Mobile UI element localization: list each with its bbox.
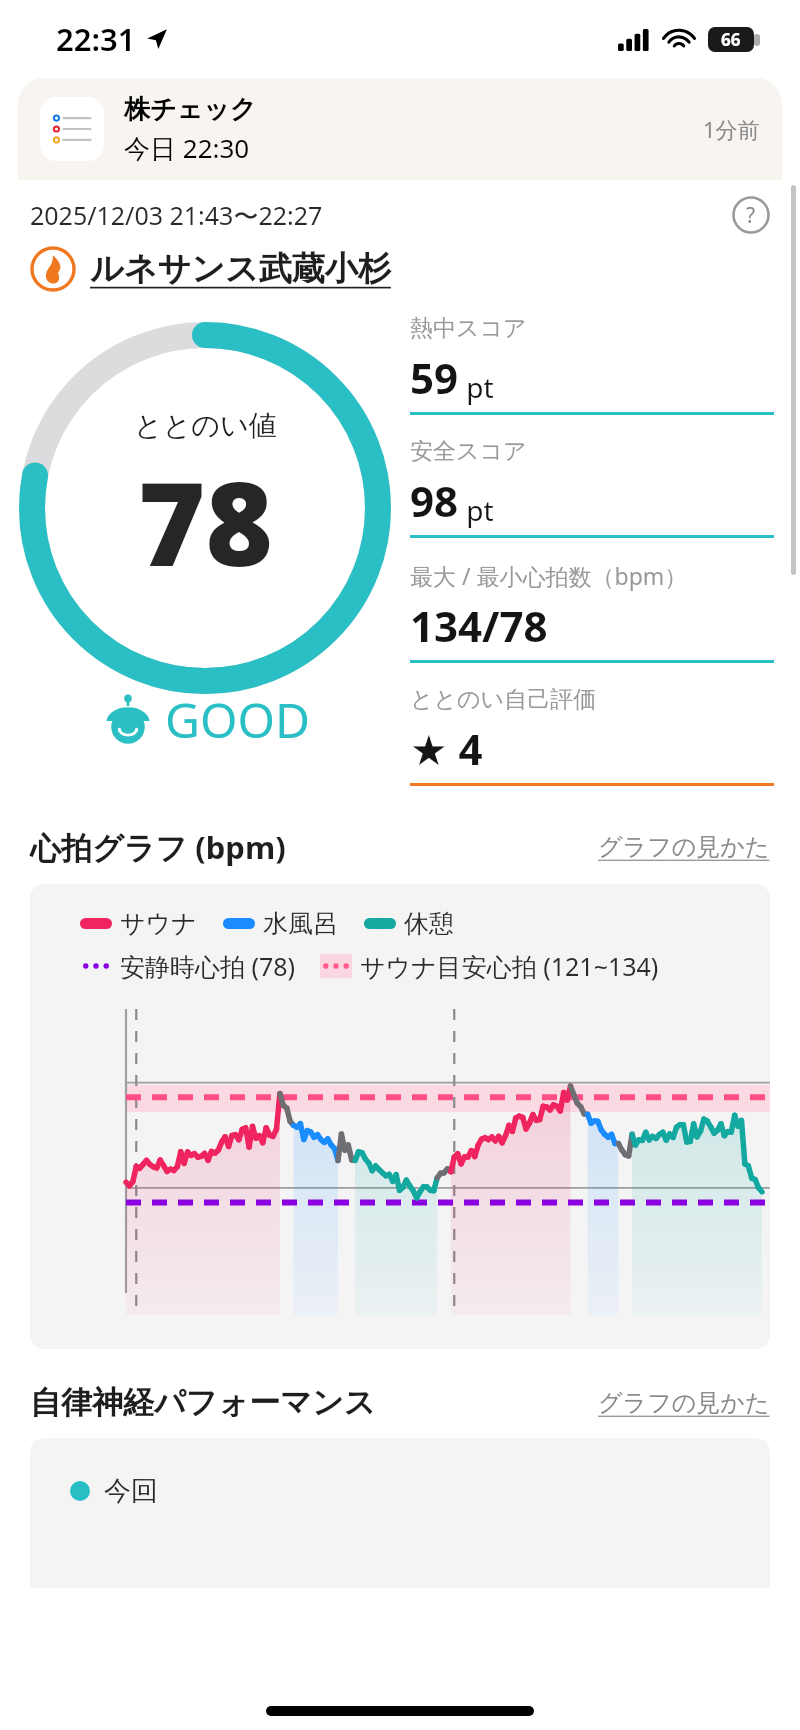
button[interactable]: ヘルプ [732, 196, 770, 234]
button[interactable]: 株チェック [18, 78, 782, 180]
staticText: 2025/12/03 21:43〜22:27 [30, 198, 323, 232]
staticText: pt [459, 368, 494, 406]
staticText: サウナ [120, 908, 197, 939]
staticText: 66 [721, 28, 741, 51]
staticText: GOOD [165, 687, 310, 752]
staticText: 安全スコア [410, 437, 527, 466]
staticText: 最大 / 最小心拍数（bpm） [410, 560, 688, 591]
staticText: 心拍グラフ (bpm) [30, 826, 286, 868]
staticText: グラフの見かた [598, 1388, 770, 1418]
staticText: 22:31 [56, 18, 136, 60]
staticText: ★ 4 [410, 720, 483, 777]
button[interactable]: ルネサンス武蔵小杉 [30, 246, 770, 292]
staticText: ととのい自己評価 [410, 685, 597, 714]
staticText: 自律神経パフォーマンス [30, 1383, 376, 1422]
staticText: グラフの見かた [598, 832, 770, 862]
button[interactable]: グラフの見かた [598, 1388, 770, 1418]
staticText: 株チェック [124, 93, 257, 126]
staticText: ルネサンス武蔵小杉 [90, 248, 391, 290]
staticText: pt [459, 491, 494, 529]
staticText: 水風呂 [263, 908, 338, 939]
staticText: 今日 22:30 [124, 130, 250, 166]
staticText: 78 [138, 443, 273, 600]
staticText: 熱中スコア [410, 314, 527, 343]
staticText: 134/78 [410, 597, 548, 654]
staticText: 59 [410, 349, 459, 406]
staticText: ? [746, 201, 756, 230]
button[interactable]: グラフの見かた [598, 832, 770, 862]
staticText: 今回 [104, 1474, 158, 1508]
staticText: 98 [410, 472, 459, 529]
staticText: 休憩 [404, 908, 454, 939]
staticText: ととのい値 [134, 408, 277, 443]
staticText: 安静時心拍 (78) [120, 949, 296, 983]
staticText: 1分前 [703, 114, 760, 144]
staticText: サウナ目安心拍 (121~134) [360, 949, 659, 983]
